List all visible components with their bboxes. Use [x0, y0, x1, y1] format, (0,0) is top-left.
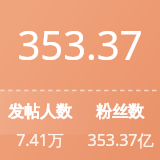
staticText: 353.37亿 [0, 17, 160, 71]
staticText: 发帖人数 [8, 102, 72, 122]
button[interactable]: 发帖人数 7.41万 [0, 102, 80, 151]
button[interactable]: 粉丝数 353.37亿 [80, 102, 160, 151]
button[interactable]: 353.37亿 [0, 0, 160, 89]
staticText: 353.37亿 [87, 129, 154, 151]
staticText: 7.41万 [16, 129, 64, 151]
staticText: 粉丝数 [96, 102, 144, 122]
